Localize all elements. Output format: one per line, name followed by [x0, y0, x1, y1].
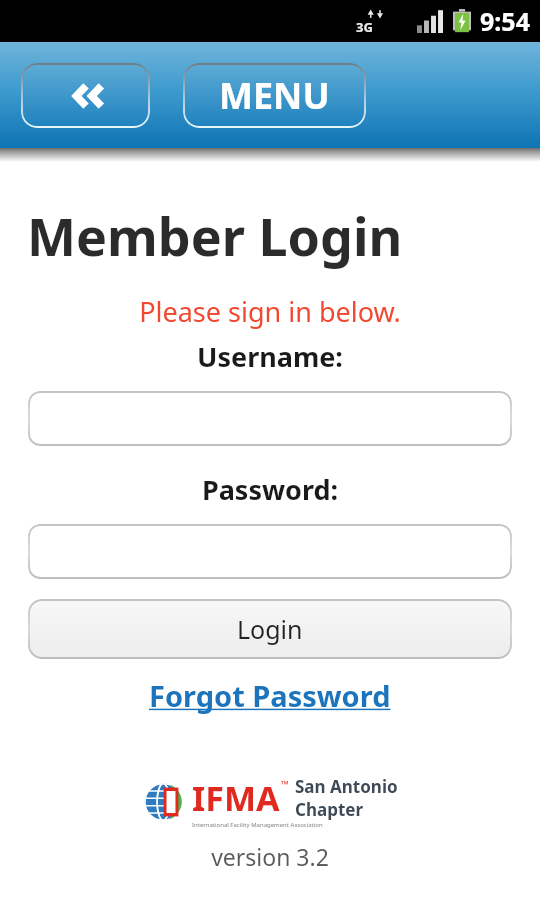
staticText: Chapter [295, 798, 364, 821]
button[interactable]: Login [28, 599, 512, 659]
button[interactable]: Back [21, 63, 150, 128]
staticText: Login [237, 612, 303, 646]
staticText: Forgot Password [149, 676, 391, 715]
staticText: IFMA [192, 775, 280, 821]
staticText: Member Login [27, 200, 403, 271]
staticText: Username: [0, 338, 540, 375]
staticText: San Antonio [295, 775, 398, 798]
button[interactable]: Forgot Password [143, 674, 397, 717]
staticText: ™ [281, 777, 289, 791]
staticText: version 3.2 [0, 841, 540, 872]
button[interactable] [28, 391, 512, 446]
button[interactable]: MENU [183, 63, 366, 128]
staticText: MENU [219, 71, 330, 120]
staticText: 9:54 [480, 4, 530, 38]
staticText: 3G [356, 18, 373, 36]
staticText: Password: [0, 471, 540, 508]
button[interactable] [28, 524, 512, 579]
staticText: International Facility Management Associ… [192, 821, 323, 829]
staticText: Please sign in below. [0, 293, 540, 330]
